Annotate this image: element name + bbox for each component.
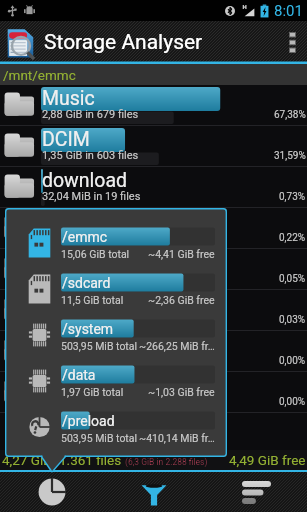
staticText: 1.361 files [59,452,122,468]
staticText: 0 B in 0 files [42,354,102,367]
button[interactable]: DCIM [0,126,307,166]
staticText: 4,27 GiB [2,452,52,468]
staticText: 0 B in 0 files [42,395,102,408]
staticText: /mnt/emmc [3,67,76,83]
staticText: 11,5 GiB total [61,294,124,306]
button[interactable]: bluetooth [0,249,307,289]
staticText: 0,00% [279,355,306,367]
staticText: 67,38% [274,109,306,121]
button[interactable]: LOST.DIR [0,331,307,371]
staticText: /emmc [62,229,108,245]
staticText: Android [42,210,110,233]
staticText: 503,95 MiB total [61,432,138,444]
staticText: bluetooth [42,251,125,274]
staticText: Podcasts [42,374,124,397]
staticText: /system [62,321,114,337]
staticText: 9,92 MiB in 24 files [42,231,135,244]
staticText: 1,35 GiB in 603 files [42,149,139,162]
button[interactable]: Sort [205,470,307,512]
button[interactable]: Podcasts [0,372,307,412]
staticText: 2,88 GiB in 679 files [42,108,139,121]
button[interactable]: Overview [0,470,103,512]
button[interactable]: Filter [103,470,205,512]
staticText: 0,00% [279,396,306,408]
staticText: 32,04 MiB in 19 files [42,190,141,203]
staticText: 31,59% [274,150,306,162]
button[interactable]: /data [5,364,227,410]
staticText: 15,06 GiB total [61,248,130,260]
staticText: ~410,14 MiB fr… [139,432,215,444]
staticText: 1,97 GiB total [61,386,124,398]
button[interactable]: More options [277,21,307,64]
staticText: /preload [62,413,115,429]
staticText: ~2,36 GiB free [148,294,215,306]
staticText: Music [42,87,95,110]
staticText: Playlists [42,292,115,315]
button[interactable]: Android [0,208,307,248]
button[interactable]: Playlists [0,290,307,330]
staticText: 0,22% [279,232,306,244]
staticText: 4,49 GiB free [229,452,306,468]
staticText: 0,73% [279,191,306,203]
staticText: LOST.DIR [42,333,122,356]
staticText: ~1,03 GiB free [148,386,215,398]
staticText: /sdcard [62,275,111,291]
staticText: 8:01 [274,2,303,20]
staticText: 1,21 MiB in 9 files [42,313,128,326]
button[interactable]: /sdcard [5,272,227,318]
button[interactable]: /preload [5,410,227,456]
staticText: 2,25 MiB in 4 files [42,272,128,285]
staticText: Storage Analyser [44,30,203,55]
staticText: 503,95 MiB total [61,340,138,352]
staticText: /data [62,367,96,383]
button[interactable]: Music [0,85,307,125]
button[interactable]: download [0,167,307,207]
button[interactable]: /emmc [5,226,227,272]
staticText: ~266,25 MiB fr… [139,340,215,352]
staticText: ~4,41 GiB free [148,248,215,260]
staticText: download [42,169,128,192]
staticText: (6,3 GiB in 2.288 files) [125,457,208,467]
staticText: 0,03% [279,314,306,326]
staticText: 0,05% [279,273,306,285]
button[interactable]: /system [5,318,227,364]
staticText: DCIM [42,128,90,151]
